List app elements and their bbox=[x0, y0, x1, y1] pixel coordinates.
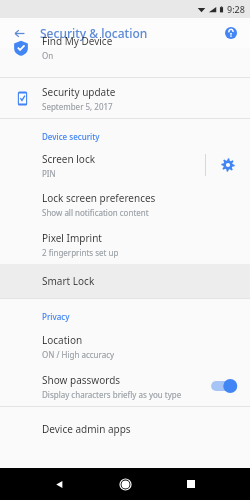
staticText: Find My Device bbox=[42, 34, 113, 48]
staticText: 9:28 bbox=[227, 3, 245, 15]
button[interactable]: Back bbox=[47, 472, 71, 496]
staticText: Show passwords bbox=[42, 373, 121, 387]
button[interactable]: Home bbox=[113, 472, 137, 496]
button[interactable]: Show passwords toggle bbox=[206, 375, 240, 397]
staticText: September 5, 2017 bbox=[42, 101, 113, 112]
button[interactable]: Lock screen preferences bbox=[0, 184, 250, 224]
staticText: Display characters briefly as you type bbox=[42, 389, 182, 400]
staticText: Smart Lock bbox=[42, 274, 95, 288]
button[interactable]: Find My Device bbox=[0, 33, 250, 62]
staticText: Screen lock bbox=[42, 152, 96, 166]
button[interactable]: Help bbox=[220, 22, 242, 44]
button[interactable]: Smart Lock bbox=[0, 264, 250, 298]
button[interactable]: Recent apps bbox=[179, 472, 203, 496]
button[interactable]: Location bbox=[0, 326, 250, 366]
staticText: Location bbox=[42, 333, 83, 347]
button[interactable]: Pixel Imprint bbox=[0, 224, 250, 264]
button[interactable]: Security update bbox=[0, 78, 250, 118]
button[interactable]: Screen lock settings bbox=[206, 146, 250, 184]
staticText: Privacy bbox=[42, 311, 70, 322]
staticText: 2 fingerprints set up bbox=[42, 247, 119, 258]
staticText: PIN bbox=[42, 168, 56, 179]
button[interactable]: Device admin apps bbox=[0, 416, 250, 442]
staticText: Device security bbox=[42, 131, 100, 142]
staticText: On bbox=[42, 50, 54, 61]
staticText: Lock screen preferences bbox=[42, 191, 156, 205]
staticText: Security & location bbox=[40, 25, 148, 41]
button[interactable]: Show passwords bbox=[0, 366, 250, 406]
button[interactable]: Back bbox=[8, 22, 30, 44]
staticText: Security update bbox=[42, 85, 116, 99]
staticText: Show all notification content bbox=[42, 207, 149, 218]
staticText: ON / High accuracy bbox=[42, 349, 115, 360]
button[interactable]: Screen lock bbox=[0, 146, 205, 184]
staticText: Device admin apps bbox=[42, 422, 131, 436]
staticText: Pixel Imprint bbox=[42, 231, 102, 245]
